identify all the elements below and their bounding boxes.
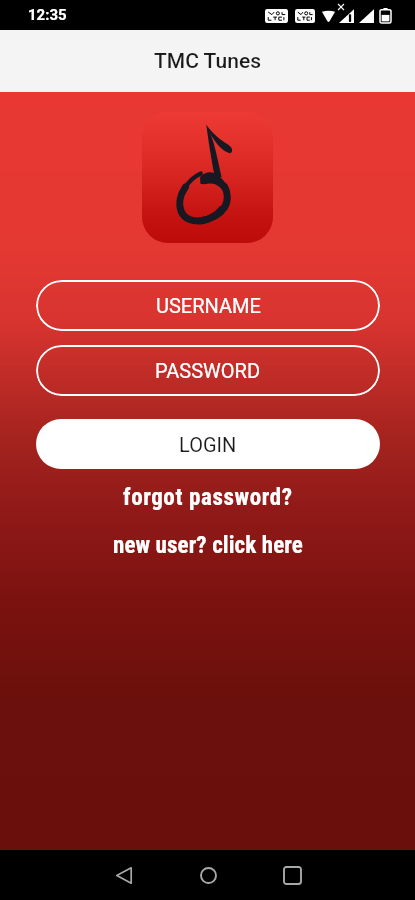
staticText: USERNAME <box>156 294 261 317</box>
button[interactable]: new user? click here <box>105 530 311 561</box>
button[interactable]: forgot password? <box>115 482 301 513</box>
button[interactable]: LOGIN <box>36 419 380 469</box>
staticText: new user? click here <box>113 532 303 559</box>
button[interactable]: Home <box>166 850 250 900</box>
staticText: TMC Tunes <box>154 49 261 74</box>
button[interactable]: PASSWORD <box>36 345 380 396</box>
button[interactable]: USERNAME <box>36 280 380 331</box>
staticText: PASSWORD <box>155 359 261 382</box>
button[interactable]: Recent apps <box>250 850 334 900</box>
staticText: 12:35 <box>28 6 67 24</box>
staticText: LOGIN <box>179 433 237 456</box>
staticText: forgot password? <box>123 484 293 511</box>
button[interactable]: Back <box>82 850 166 900</box>
